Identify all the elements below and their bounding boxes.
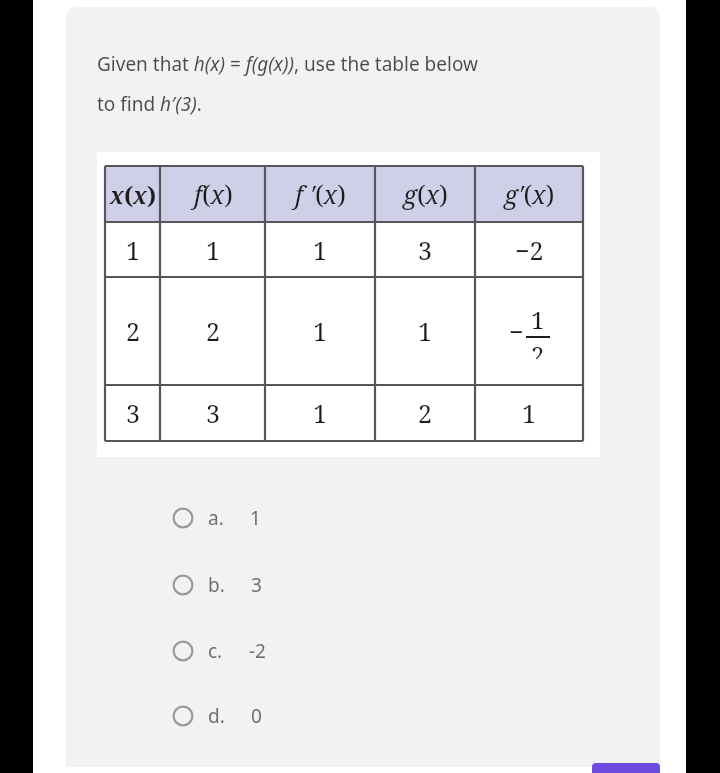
- staticText: 3: [206, 396, 220, 430]
- staticText: 1: [250, 505, 261, 531]
- staticText: 3: [251, 572, 262, 598]
- staticText: 3: [418, 233, 432, 267]
- staticText: b.: [208, 572, 225, 598]
- button[interactable]: c.: [66, 627, 660, 675]
- staticText: g′(x): [504, 177, 555, 211]
- staticText: 2: [531, 338, 545, 359]
- staticText: 1: [313, 314, 327, 348]
- staticText: 1: [126, 233, 140, 267]
- staticText: −2: [515, 233, 544, 267]
- staticText: 0: [251, 703, 262, 729]
- staticText: a.: [208, 505, 224, 531]
- staticText: 2: [126, 314, 140, 348]
- staticText: c.: [208, 638, 223, 664]
- button[interactable]: Submit: [592, 763, 660, 773]
- staticText: f(x): [194, 177, 233, 211]
- button[interactable]: b.: [66, 561, 660, 609]
- staticText: 1: [522, 396, 536, 430]
- staticText: 1: [313, 396, 327, 430]
- staticText: 2: [206, 314, 220, 348]
- staticText: f ′(x): [295, 177, 346, 211]
- staticText: 1: [531, 303, 545, 336]
- staticText: d.: [208, 703, 225, 729]
- staticText: Given that h(x) = f(g(x)), use the table…: [97, 51, 478, 77]
- staticText: to find h′(3).: [97, 91, 202, 117]
- staticText: 1: [206, 233, 220, 267]
- staticText: g(x): [403, 177, 448, 211]
- staticText: -2: [249, 638, 266, 664]
- button[interactable]: a.: [66, 494, 660, 542]
- button[interactable]: d.: [66, 692, 660, 740]
- staticText: 2: [418, 396, 432, 430]
- staticText: −: [509, 314, 524, 348]
- staticText: 3: [126, 396, 140, 430]
- staticText: 1: [418, 314, 432, 348]
- staticText: 1: [313, 233, 327, 267]
- staticText: x(x): [110, 179, 157, 210]
